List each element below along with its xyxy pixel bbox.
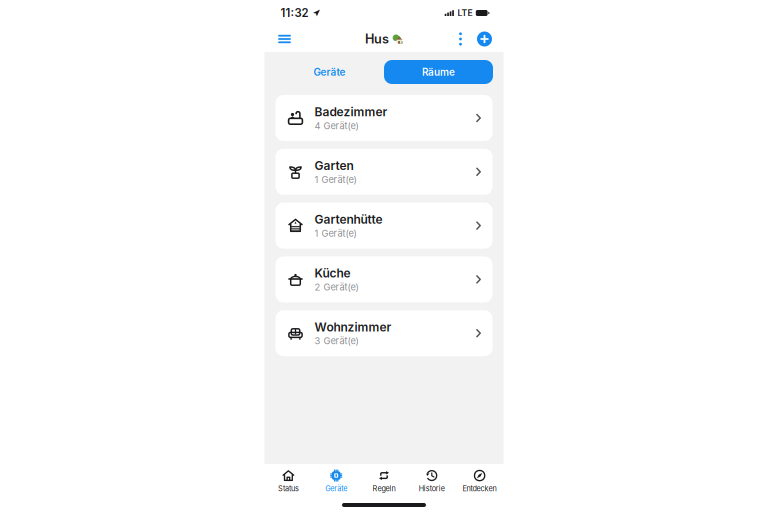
button[interactable]: Wohnzimmer — [275, 310, 492, 356]
staticText: LTE — [457, 8, 472, 18]
staticText: 4 Gerät(e) — [314, 120, 358, 131]
staticText: 1 Gerät(e) — [314, 228, 356, 239]
staticText: Status — [278, 484, 299, 493]
staticText: 1 Gerät(e) — [314, 174, 356, 185]
staticText: Regeln — [372, 484, 395, 493]
staticText: Geräte — [325, 484, 347, 493]
button[interactable]: Add — [471, 26, 497, 52]
button[interactable]: Küche — [275, 256, 492, 302]
button[interactable]: Geräte — [275, 60, 384, 84]
staticText: Küche — [314, 266, 350, 280]
button[interactable]: Regeln — [360, 464, 408, 498]
staticText: Entdecken — [463, 484, 497, 493]
staticText: 11:32 — [280, 6, 308, 20]
staticText: Badezimmer — [314, 105, 387, 119]
button[interactable]: Menu — [271, 26, 297, 52]
staticText: Gartenhütte — [314, 212, 382, 227]
staticText: Geräte — [313, 66, 345, 78]
staticText: Historie — [419, 484, 445, 493]
button[interactable]: Geräte — [312, 464, 360, 498]
staticText: Wohnzimmer — [314, 320, 391, 334]
staticText: 2 Gerät(e) — [314, 281, 358, 293]
button[interactable]: Räume — [384, 60, 493, 84]
button[interactable]: Status — [264, 464, 312, 498]
staticText: Garten — [314, 158, 353, 173]
staticText: Hus — [365, 31, 389, 47]
button[interactable]: Entdecken — [456, 464, 503, 498]
button[interactable]: Historie — [408, 464, 456, 498]
staticText: Räume — [422, 66, 455, 78]
staticText: 3 Gerät(e) — [314, 335, 358, 347]
button[interactable]: Gartenhütte — [275, 203, 492, 249]
button[interactable]: More options — [449, 26, 471, 52]
button[interactable]: Badezimmer — [275, 95, 492, 141]
button[interactable]: Garten — [275, 149, 492, 195]
